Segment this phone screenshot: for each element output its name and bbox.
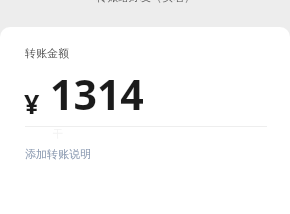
staticText: 添加转账说明	[25, 147, 91, 161]
staticText: 转账金额	[25, 46, 69, 60]
staticText: 干	[53, 127, 63, 140]
button[interactable]: 添加转账说明	[25, 147, 91, 161]
button[interactable]: ¥	[24, 66, 290, 122]
staticText: 转账给好友（实名）	[96, 0, 195, 4]
staticText: 1314	[50, 66, 144, 122]
staticText: ¥	[24, 85, 40, 122]
